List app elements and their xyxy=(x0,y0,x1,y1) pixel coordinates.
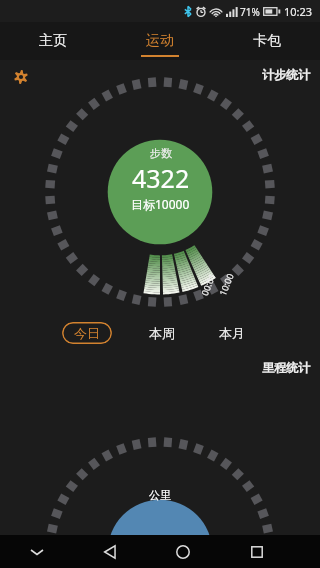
staticText: 71% xyxy=(240,5,260,19)
staticText: 今日 xyxy=(74,325,100,341)
staticText: 计步统计 xyxy=(262,67,310,82)
button[interactable]: Recents xyxy=(220,535,294,568)
button[interactable]: Back xyxy=(73,535,146,568)
staticText: 主页 xyxy=(39,32,67,50)
button[interactable]: 本月 xyxy=(210,322,254,344)
staticText: 卡包 xyxy=(253,32,281,50)
button[interactable]: 今日 xyxy=(62,322,112,344)
staticText: 里程统计 xyxy=(262,360,310,375)
staticText: 4322 xyxy=(132,161,190,195)
staticText: 本周 xyxy=(149,325,175,341)
staticText: 10:00 xyxy=(216,271,236,297)
staticText: 步数 xyxy=(150,146,172,160)
button[interactable]: 卡包 xyxy=(213,22,320,60)
staticText: 本月 xyxy=(219,325,245,341)
staticText: 目标10000 xyxy=(131,196,190,212)
button[interactable]: Settings xyxy=(10,66,32,88)
button[interactable]: 本周 xyxy=(140,322,184,344)
staticText: 公里 xyxy=(149,488,171,502)
button[interactable]: Hide keyboard xyxy=(0,535,73,568)
staticText: 运动 xyxy=(146,32,174,50)
staticText: 10:23 xyxy=(284,4,313,19)
staticText: 00:01 xyxy=(198,271,218,297)
button[interactable]: 主页 xyxy=(0,22,106,60)
button[interactable]: Home xyxy=(146,535,220,568)
button[interactable]: 运动 xyxy=(106,22,213,60)
